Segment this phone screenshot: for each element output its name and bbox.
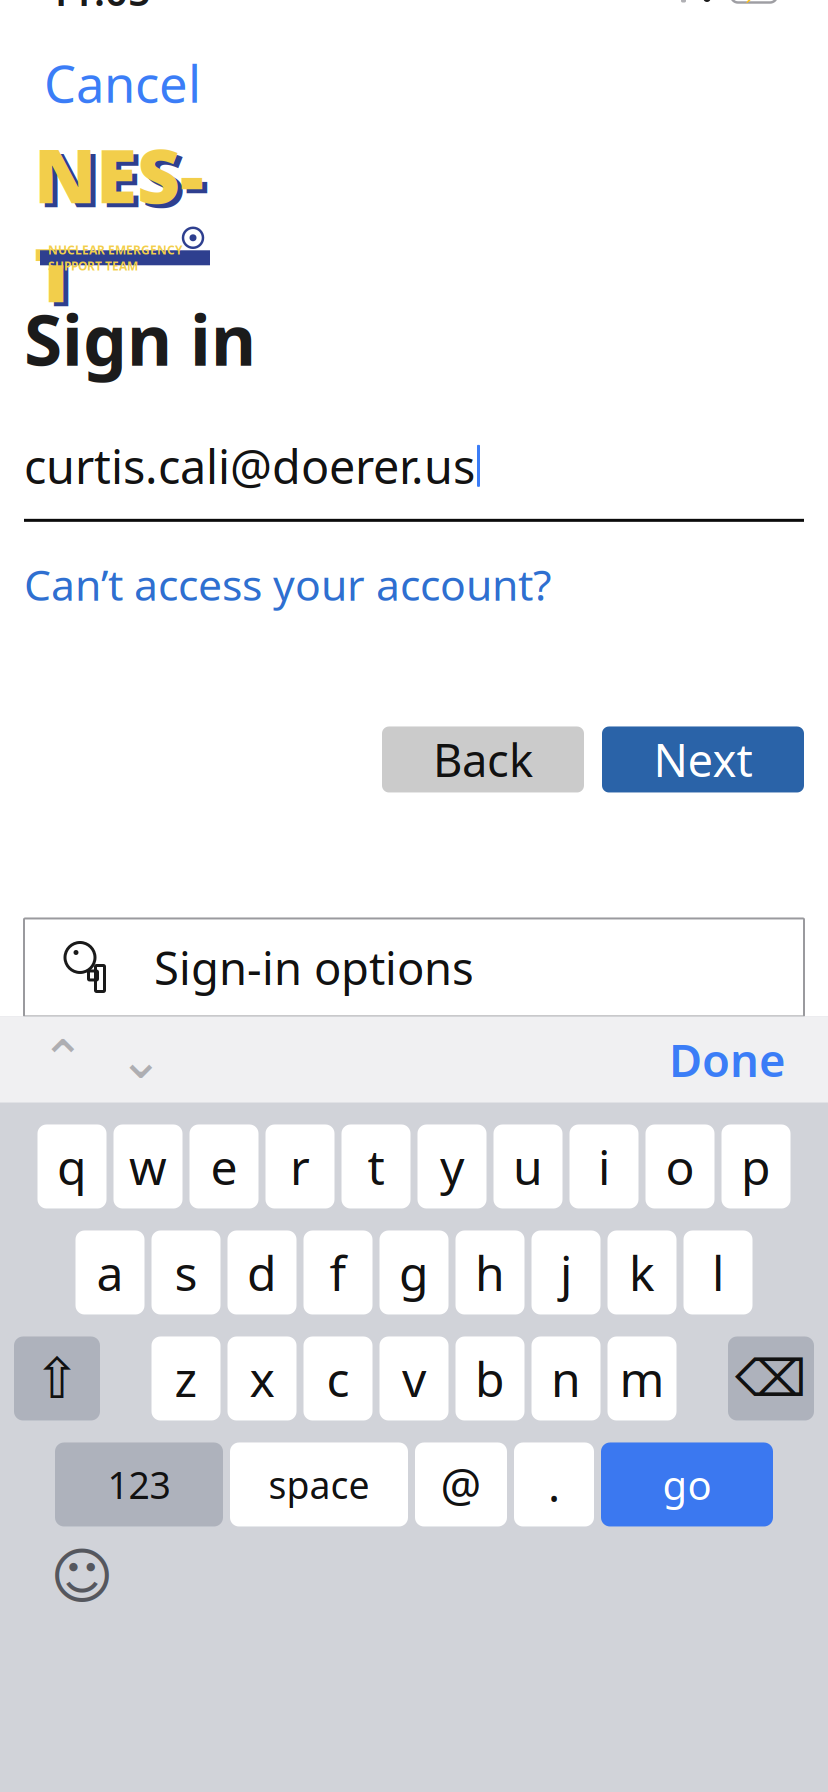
staticText: x: [249, 1347, 274, 1410]
button[interactable]: w: [113, 1124, 182, 1208]
staticText: n: [551, 1347, 581, 1410]
staticText: curtis.cali@doerer.us: [24, 435, 475, 497]
staticText: h: [475, 1241, 505, 1304]
button[interactable]: o: [645, 1124, 714, 1208]
button[interactable]: v: [379, 1336, 448, 1420]
staticText: Next: [653, 729, 752, 790]
staticText: Cancel: [44, 49, 201, 117]
button[interactable]: Emoji: [46, 1540, 118, 1612]
staticText: a: [96, 1241, 123, 1304]
button[interactable]: y: [417, 1124, 486, 1208]
staticText: ⌄: [118, 1029, 163, 1090]
staticText: ⇧: [33, 1347, 80, 1410]
staticText: l: [712, 1241, 724, 1304]
button[interactable]: u: [493, 1124, 562, 1208]
staticText: k: [629, 1241, 655, 1304]
staticText: i: [598, 1135, 610, 1198]
staticText: Sign-in options: [154, 937, 474, 998]
staticText: y: [440, 1135, 464, 1198]
staticText: go: [662, 1458, 711, 1511]
staticText: .: [548, 1454, 560, 1515]
staticText: 123: [107, 1460, 170, 1509]
staticText: q: [57, 1135, 87, 1198]
staticText: m: [619, 1347, 664, 1410]
staticText: NEST: [34, 125, 204, 323]
button[interactable]: e: [189, 1124, 258, 1208]
staticText: j: [560, 1241, 572, 1304]
staticText: e: [210, 1135, 237, 1198]
button[interactable]: s: [151, 1230, 220, 1314]
button[interactable]: l: [683, 1230, 752, 1314]
button[interactable]: Shift: [14, 1336, 100, 1420]
button[interactable]: n: [531, 1336, 600, 1420]
staticText: d: [247, 1241, 277, 1304]
staticText: 11:05: [48, 0, 151, 17]
staticText: NEST: [39, 129, 209, 327]
staticText: b: [475, 1347, 505, 1410]
button[interactable]: h: [455, 1230, 524, 1314]
button[interactable]: b: [455, 1336, 524, 1420]
button[interactable]: q: [37, 1124, 106, 1208]
staticText: r: [290, 1135, 310, 1198]
staticText: ⚡: [740, 0, 768, 3]
button[interactable]: Can’t access your account?: [24, 550, 552, 618]
staticText: Can’t access your account?: [24, 556, 552, 612]
button[interactable]: Back: [382, 726, 584, 792]
staticText: o: [665, 1135, 694, 1198]
staticText: f: [329, 1241, 346, 1304]
button[interactable]: @: [415, 1442, 507, 1526]
staticText: ⌫: [735, 1350, 807, 1407]
button[interactable]: Delete: [728, 1336, 814, 1420]
button[interactable]: space: [230, 1442, 408, 1526]
button[interactable]: Previous field: [24, 1020, 102, 1098]
staticText: w: [129, 1135, 167, 1198]
staticText: Done: [669, 1029, 786, 1090]
staticText: Back: [433, 729, 533, 790]
button[interactable]: .: [514, 1442, 594, 1526]
button[interactable]: r: [265, 1124, 334, 1208]
staticText: Sign in: [24, 293, 256, 385]
button[interactable]: Next: [602, 726, 804, 792]
staticText: u: [513, 1135, 543, 1198]
staticText: ☺: [50, 1542, 114, 1611]
staticText: v: [402, 1347, 426, 1410]
button[interactable]: Sign-in options: [24, 918, 804, 1016]
button[interactable]: a: [75, 1230, 144, 1314]
staticText: g: [399, 1241, 429, 1304]
button[interactable]: f: [303, 1230, 372, 1314]
button[interactable]: Next field: [102, 1020, 180, 1098]
button[interactable]: Done: [651, 1020, 804, 1098]
button[interactable]: g: [379, 1230, 448, 1314]
button[interactable]: i: [569, 1124, 638, 1208]
button[interactable]: t: [341, 1124, 410, 1208]
button[interactable]: d: [227, 1230, 296, 1314]
button[interactable]: k: [607, 1230, 676, 1314]
staticText: s: [174, 1241, 197, 1304]
button[interactable]: x: [227, 1336, 296, 1420]
button[interactable]: j: [531, 1230, 600, 1314]
button[interactable]: m: [607, 1336, 676, 1420]
button[interactable]: go: [601, 1442, 773, 1526]
staticText: t: [367, 1135, 384, 1198]
button[interactable]: z: [151, 1336, 220, 1420]
staticText: z: [174, 1347, 197, 1410]
staticText: space: [268, 1460, 369, 1509]
staticText: p: [741, 1135, 771, 1198]
staticText: c: [326, 1347, 349, 1410]
staticText: @: [440, 1454, 481, 1515]
staticText: ⌃: [40, 1029, 85, 1090]
button[interactable]: c: [303, 1336, 372, 1420]
button[interactable]: p: [721, 1124, 790, 1208]
button[interactable]: Cancel: [40, 43, 205, 123]
staticText: NUCLEAR EMERGENCY SUPPORT TEAM: [48, 242, 183, 274]
button[interactable]: 123: [55, 1442, 223, 1526]
